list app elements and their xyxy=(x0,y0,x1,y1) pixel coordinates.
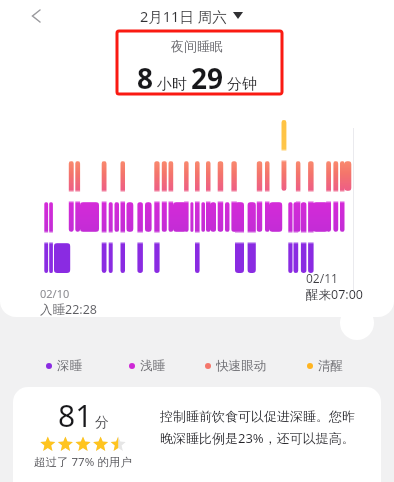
staticText: 深睡 xyxy=(57,358,82,373)
staticText: 清醒 xyxy=(318,358,343,373)
staticText: 浅睡 xyxy=(140,358,165,373)
staticText: 02/10 xyxy=(40,286,70,301)
staticText: 81 xyxy=(58,395,93,436)
button[interactable]: 快速眼动 xyxy=(205,358,266,373)
staticText: 超过了 77% 的用户 xyxy=(34,454,132,470)
staticText: 02/11 xyxy=(306,270,338,286)
button[interactable]: Add sleep note xyxy=(340,306,374,340)
button[interactable]: 深睡 xyxy=(46,358,82,373)
staticText: 夜间睡眠 xyxy=(171,38,223,54)
staticText: 醒来07:00 xyxy=(306,286,363,303)
staticText: 2月11日 周六 xyxy=(140,6,227,26)
button[interactable]: Back xyxy=(18,0,54,31)
button[interactable]: 2月11日 周六 xyxy=(140,4,243,27)
staticText: 入睡22:28 xyxy=(40,301,97,318)
button[interactable]: 浅睡 xyxy=(129,358,165,373)
staticText: 29 xyxy=(191,59,224,97)
staticText: 8 xyxy=(137,59,154,97)
staticText: 分钟 xyxy=(227,75,257,94)
staticText: 快速眼动 xyxy=(216,358,266,373)
staticText: 分 xyxy=(95,414,109,432)
button[interactable]: 清醒 xyxy=(307,358,343,373)
staticText: 控制睡前饮食可以促进深睡。您昨晚深睡比例是23%，还可以提高。 xyxy=(160,408,360,447)
staticText: 小时 xyxy=(157,75,187,94)
